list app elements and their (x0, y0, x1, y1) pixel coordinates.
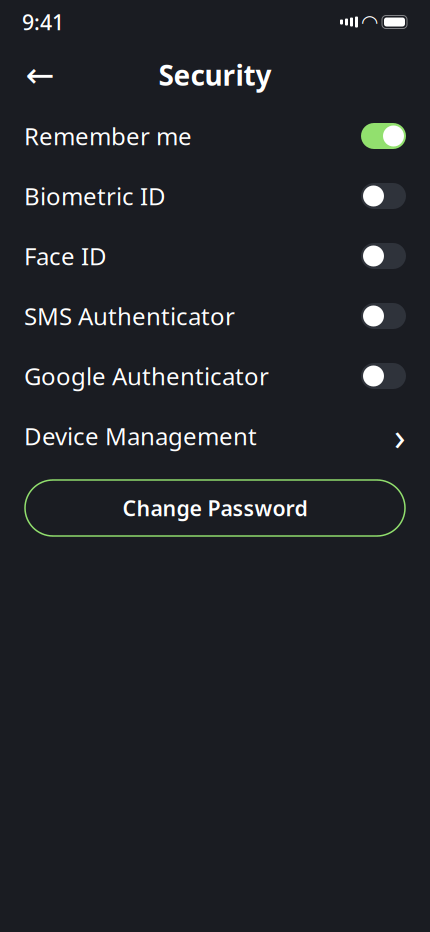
staticText: Security (158, 56, 271, 94)
staticText: Device Management (24, 420, 257, 452)
staticText: Google Authenticator (24, 360, 269, 392)
button[interactable]: Change Password (25, 480, 405, 536)
staticText: Face ID (24, 240, 107, 272)
button[interactable]: Google Authenticator (0, 346, 430, 406)
button[interactable]: Biometric ID (0, 166, 430, 226)
staticText: ◠ (362, 11, 377, 33)
staticText: Biometric ID (24, 180, 166, 212)
staticText: SMS Authenticator (24, 300, 235, 332)
staticText: ← (25, 55, 54, 95)
staticText: › (394, 411, 406, 461)
button[interactable]: SMS Authenticator (0, 286, 430, 346)
button[interactable]: Face ID (0, 226, 430, 286)
button[interactable]: Back (18, 53, 62, 97)
button[interactable]: Device Management (0, 406, 430, 466)
staticText: Change Password (122, 494, 307, 522)
staticText: Remember me (24, 120, 192, 152)
staticText: 9:41 (22, 8, 64, 36)
button[interactable]: Remember me (0, 106, 430, 166)
